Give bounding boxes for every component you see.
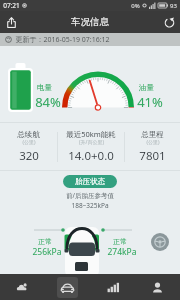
staticText: 14.0+0.0 <box>68 148 114 164</box>
button[interactable]: Profile <box>135 274 180 300</box>
staticText: 256kPa <box>32 246 62 258</box>
staticText: 0% <box>131 2 140 10</box>
staticText: (公里) <box>22 139 36 146</box>
button[interactable]: 胎压状态 <box>63 175 117 188</box>
staticText: 41% <box>137 93 163 111</box>
staticText: 油量 <box>139 83 154 92</box>
staticText: 最近50km能耗 <box>66 129 116 139</box>
staticText: 93 <box>170 2 177 10</box>
staticText: 274kPa <box>107 246 137 258</box>
staticText: 总里程 <box>141 130 164 139</box>
staticText: 07:21 <box>3 1 20 10</box>
button[interactable]: Refresh <box>158 11 180 33</box>
button[interactable]: Share <box>0 11 22 33</box>
staticText: (升/百公里) <box>79 139 104 146</box>
staticText: 前/后胎压参考值 <box>66 191 114 200</box>
staticText: 7801 <box>139 148 166 164</box>
button[interactable]: Statistics <box>90 274 135 300</box>
staticText: 总续航 <box>17 130 40 139</box>
staticText: 84% <box>35 93 61 111</box>
button[interactable]: Weather <box>0 274 45 300</box>
staticText: 正常 <box>113 237 127 246</box>
button[interactable]: Vehicle <box>45 274 90 300</box>
staticText: (公里) <box>146 139 160 146</box>
staticText: 胎压状态 <box>75 177 105 186</box>
staticText: 更新于：2016-05-19 07:16:12 <box>15 35 110 45</box>
staticText: 正常 <box>38 237 52 246</box>
staticText: 电量 <box>37 83 52 92</box>
staticText: 188~325kPa <box>71 201 109 210</box>
staticText: 车况信息 <box>71 16 109 28</box>
staticText: 320 <box>19 148 39 164</box>
button[interactable]: Steering wheel <box>151 233 169 251</box>
